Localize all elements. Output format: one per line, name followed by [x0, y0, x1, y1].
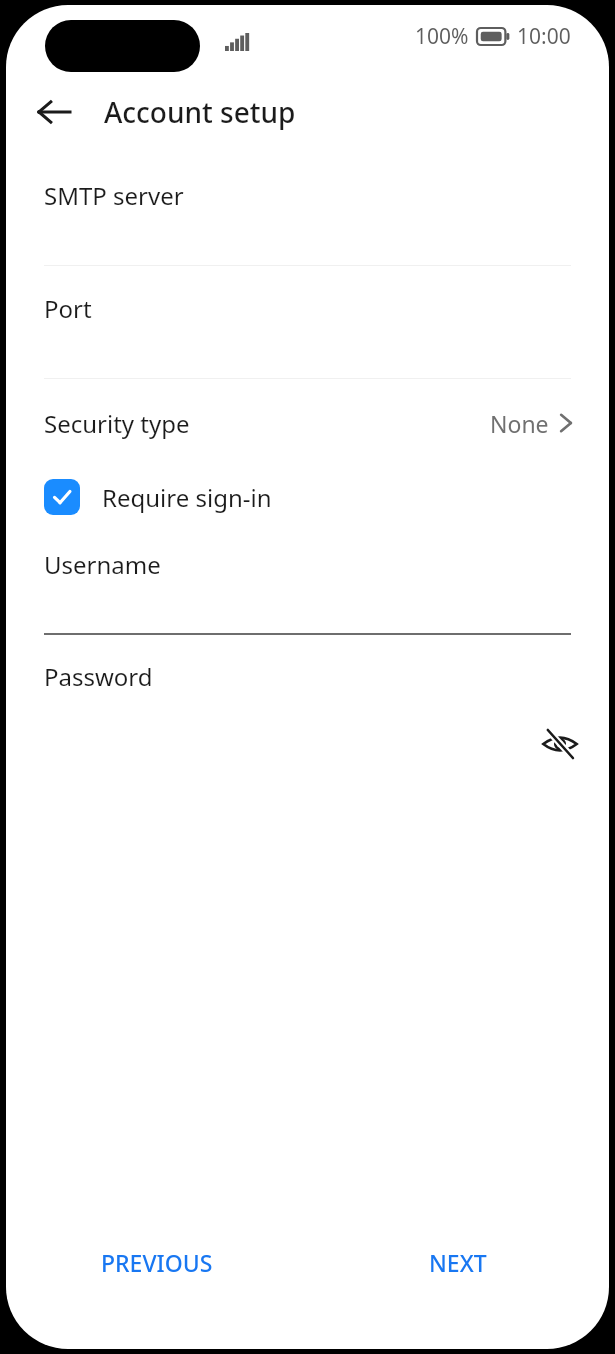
button[interactable]: Require sign-in — [6, 477, 609, 517]
button[interactable]: Port — [44, 292, 571, 325]
button[interactable]: PREVIOUS — [81, 1237, 233, 1288]
button[interactable]: Security type — [6, 399, 609, 447]
button[interactable]: Back — [28, 86, 80, 138]
staticText: SMTP server — [44, 179, 184, 212]
staticText: Username — [44, 548, 161, 581]
staticText: None — [490, 408, 549, 439]
button[interactable]: NEXT — [409, 1237, 507, 1288]
staticText: NEXT — [429, 1247, 487, 1278]
staticText: 100% — [415, 22, 469, 51]
staticText: Require sign-in — [102, 481, 272, 514]
staticText: Security type — [44, 407, 190, 440]
staticText: Account setup — [104, 93, 296, 131]
button[interactable]: SMTP server — [44, 179, 571, 212]
staticText: PREVIOUS — [101, 1247, 213, 1278]
staticText: Port — [44, 292, 92, 325]
button[interactable]: Show password — [533, 717, 587, 771]
button[interactable]: Username — [44, 548, 571, 581]
staticText: Password — [44, 660, 153, 693]
button[interactable]: Password — [44, 660, 571, 693]
staticText: 10:00 — [517, 22, 571, 51]
